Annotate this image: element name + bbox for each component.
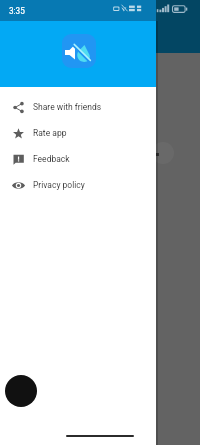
button[interactable]: Feedback (0, 146, 156, 172)
staticText: Feedback (33, 154, 70, 164)
staticText: 3:35 (9, 6, 25, 16)
button[interactable]: Privacy policy (0, 172, 156, 198)
staticText: Share with friends (33, 102, 102, 112)
staticText: Rate app (33, 128, 67, 138)
button[interactable]: Record (5, 375, 37, 407)
staticText: Privacy policy (33, 180, 85, 190)
button[interactable]: Rate app (0, 120, 156, 146)
button[interactable]: Share with friends (0, 94, 156, 120)
